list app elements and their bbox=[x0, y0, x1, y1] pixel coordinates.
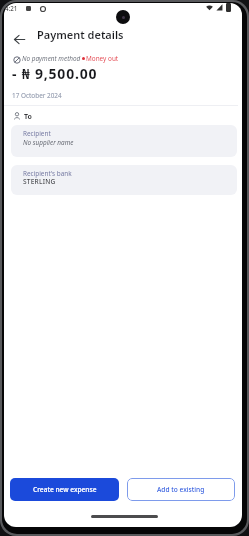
staticText: 4:21 bbox=[5, 4, 18, 12]
staticText: STERLING bbox=[23, 177, 56, 186]
button[interactable]: Recipient bbox=[11, 125, 237, 157]
staticText: Recipient bbox=[23, 129, 51, 138]
staticText: 17 October 2024 bbox=[12, 91, 62, 100]
staticText: To bbox=[24, 112, 32, 122]
staticText: - ₦ 9,500.00 bbox=[12, 64, 98, 83]
staticText: No payment method bbox=[22, 54, 81, 63]
button[interactable] bbox=[11, 31, 27, 47]
staticText: Money out bbox=[86, 54, 119, 63]
staticText: No supplier name bbox=[23, 138, 74, 147]
staticText: Add to existing bbox=[157, 485, 205, 494]
staticText: Create new expense bbox=[33, 485, 97, 494]
button[interactable]: Create new expense bbox=[10, 478, 119, 501]
staticText: Payment details bbox=[37, 27, 124, 42]
button[interactable]: Recipient's bank bbox=[11, 165, 237, 195]
button[interactable]: Add to existing bbox=[127, 478, 235, 501]
staticText: Recipient's bank bbox=[23, 169, 72, 178]
